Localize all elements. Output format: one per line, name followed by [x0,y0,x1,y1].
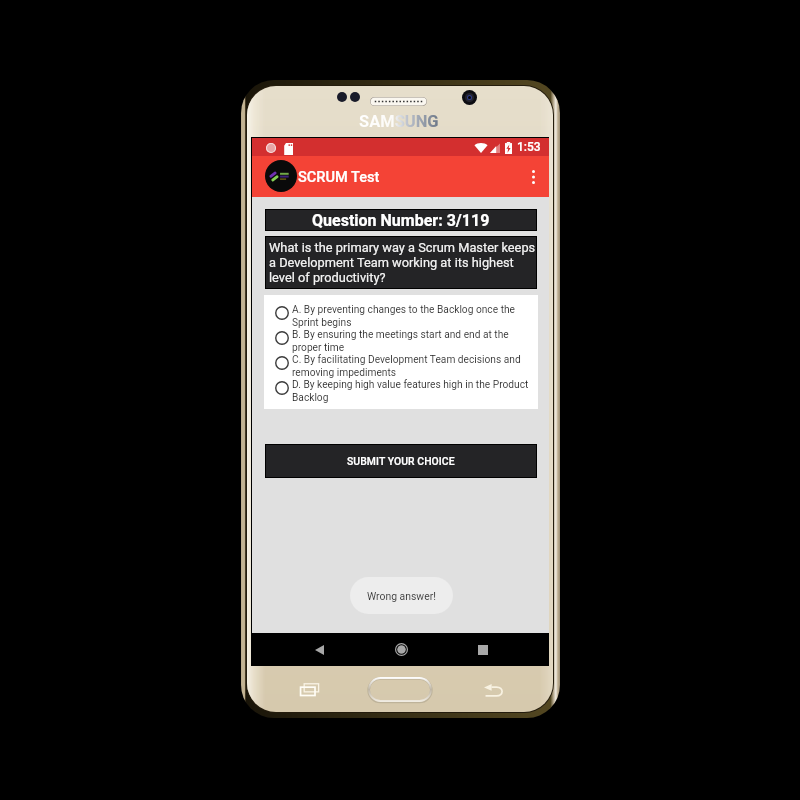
staticText: SAMSUNG [359,112,439,131]
button[interactable]: Home [378,633,424,666]
button[interactable]: SUBMIT YOUR CHOICE [266,445,536,477]
staticText: A. By preventing changes to the Backlog … [292,304,532,328]
button[interactable]: More options [518,156,549,197]
staticText: Wrong answer! [367,590,436,602]
staticText: B. By ensuring the meetings start and en… [292,329,532,353]
staticText: SCRUM Test [298,168,380,185]
button[interactable]: Back [296,633,342,666]
button[interactable]: Back [484,684,503,697]
button[interactable]: A. By preventing changes to the Backlog … [264,304,538,329]
staticText: C. By facilitating Development Team deci… [292,354,532,378]
staticText: Question Number: 3/119 [312,211,490,230]
staticText: What is the primary way a Scrum Master k… [269,240,536,285]
button[interactable]: C. By facilitating Development Team deci… [264,354,538,379]
button[interactable]: B. By ensuring the meetings start and en… [264,329,538,354]
button[interactable]: Recent apps [460,633,506,666]
staticText: 1:53 [517,140,541,154]
staticText: D. By keeping high value features high i… [292,379,532,403]
button[interactable]: D. By keeping high value features high i… [264,379,538,404]
button[interactable]: Recent apps [300,683,319,696]
button[interactable]: Home [368,677,432,702]
staticText: SUBMIT YOUR CHOICE [347,455,455,467]
